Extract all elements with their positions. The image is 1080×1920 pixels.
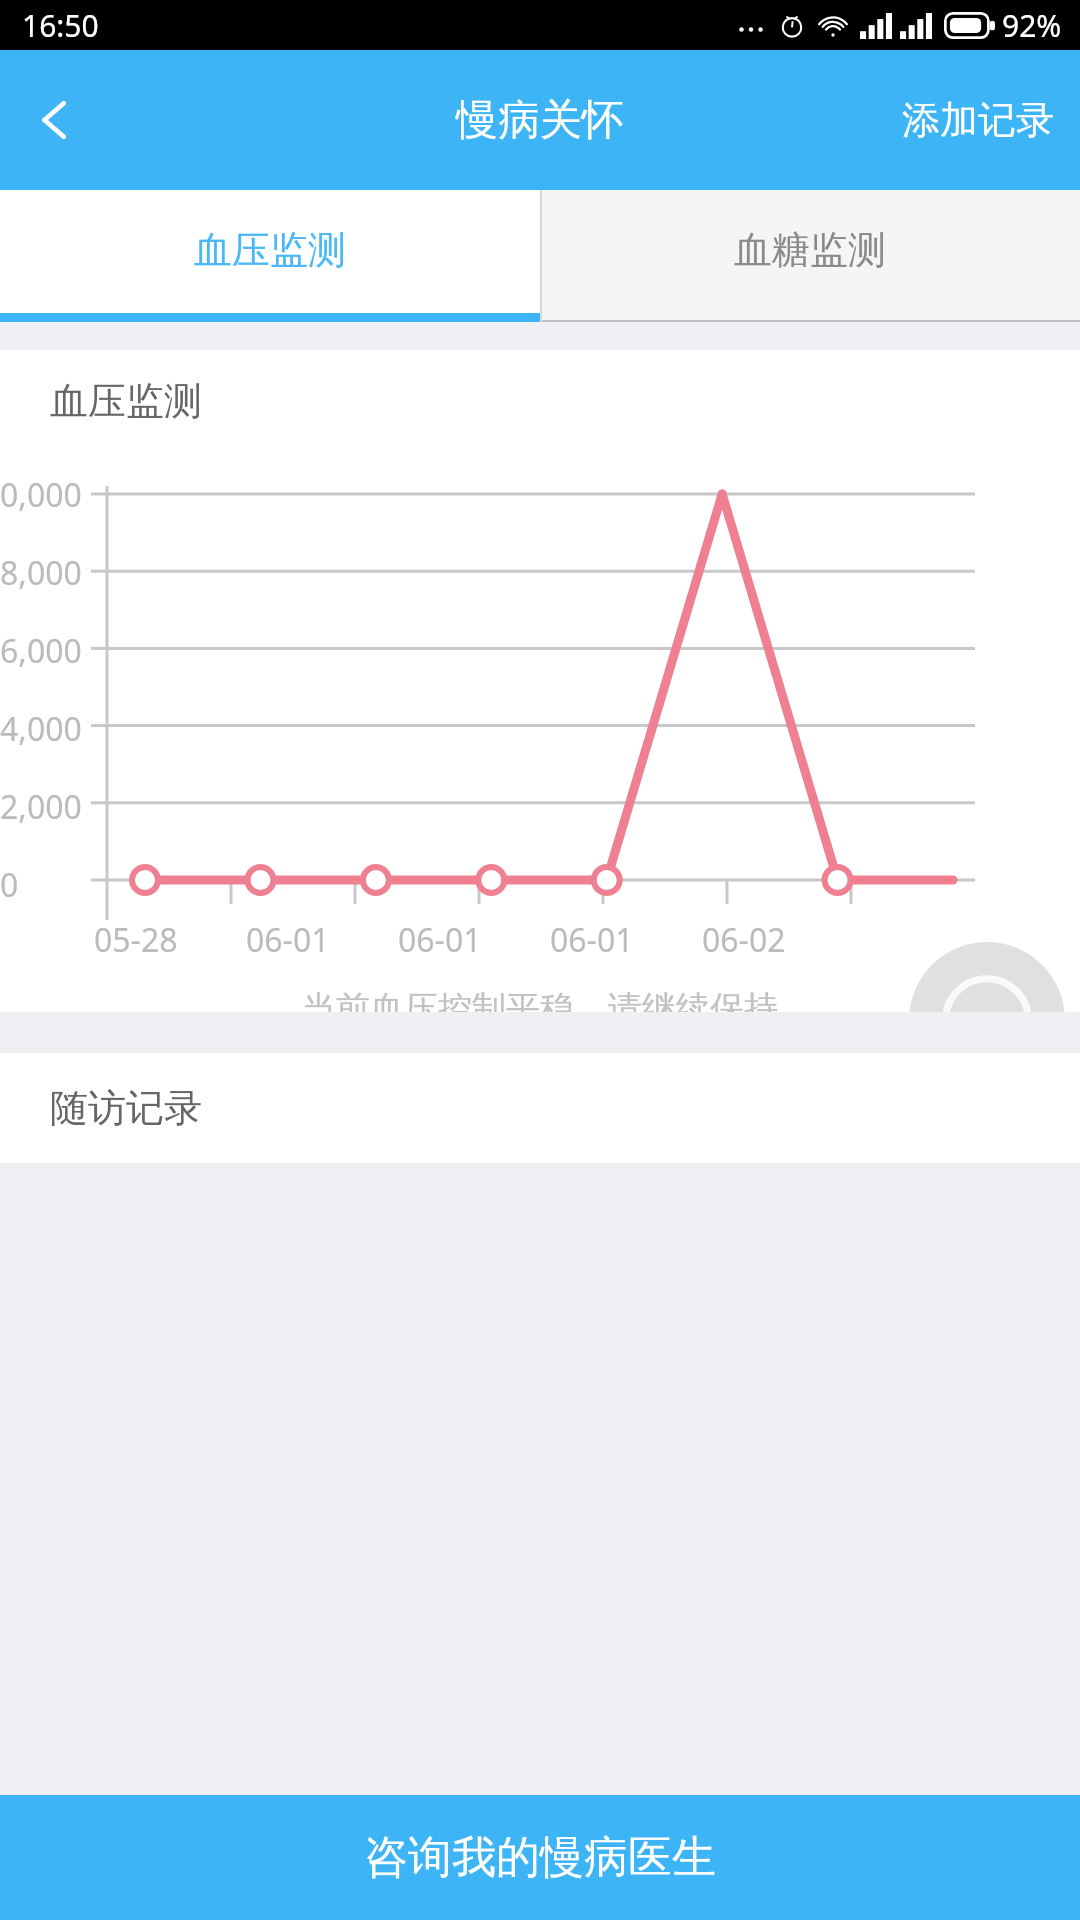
staticText: 16:50: [22, 5, 99, 46]
staticText: 随访记录: [50, 1084, 202, 1132]
staticText: 血糖监测: [734, 226, 886, 274]
button[interactable]: Back: [0, 50, 110, 190]
button[interactable]: Record: [909, 942, 1065, 1098]
staticText: 06-02: [702, 918, 786, 962]
staticText: 6,000: [0, 629, 82, 673]
staticText: 添加记录: [902, 96, 1054, 144]
staticText: 8,000: [0, 551, 82, 595]
staticText: 当前血压控制平稳，请继续保持: [302, 987, 778, 1012]
staticText: 4,000: [0, 707, 82, 751]
button[interactable]: 血糖监测: [540, 190, 1080, 322]
button[interactable]: 咨询我的慢病医生: [0, 1795, 1080, 1920]
staticText: 06-01: [550, 918, 634, 962]
staticText: 92%: [1002, 5, 1062, 46]
staticText: 咨询我的慢病医生: [364, 1830, 716, 1885]
staticText: 血压监测: [50, 377, 202, 425]
staticText: 06-01: [246, 918, 330, 962]
staticText: 2,000: [0, 785, 82, 829]
staticText: 06-01: [398, 918, 482, 962]
staticText: 慢病关怀: [456, 94, 624, 147]
staticText: 血压监测: [194, 226, 346, 274]
button[interactable]: 添加记录: [876, 50, 1080, 190]
staticText: 05-28: [94, 918, 178, 962]
staticText: 0,000: [0, 473, 82, 517]
button[interactable]: 血压监测: [0, 190, 540, 322]
staticText: 0: [0, 863, 19, 907]
